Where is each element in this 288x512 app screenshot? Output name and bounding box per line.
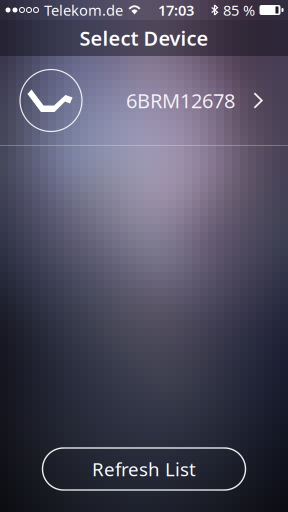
staticText: 85 % [223, 0, 255, 20]
staticText: 6BRM12678 [126, 87, 235, 114]
staticText: Select Device [79, 25, 208, 51]
staticText: Refresh List [92, 457, 196, 481]
staticText: 17:03 [158, 0, 194, 20]
staticText: Telekom.de [44, 0, 123, 20]
button[interactable]: Refresh List [42, 448, 245, 490]
button[interactable]: 6BRM12678 [0, 56, 288, 146]
